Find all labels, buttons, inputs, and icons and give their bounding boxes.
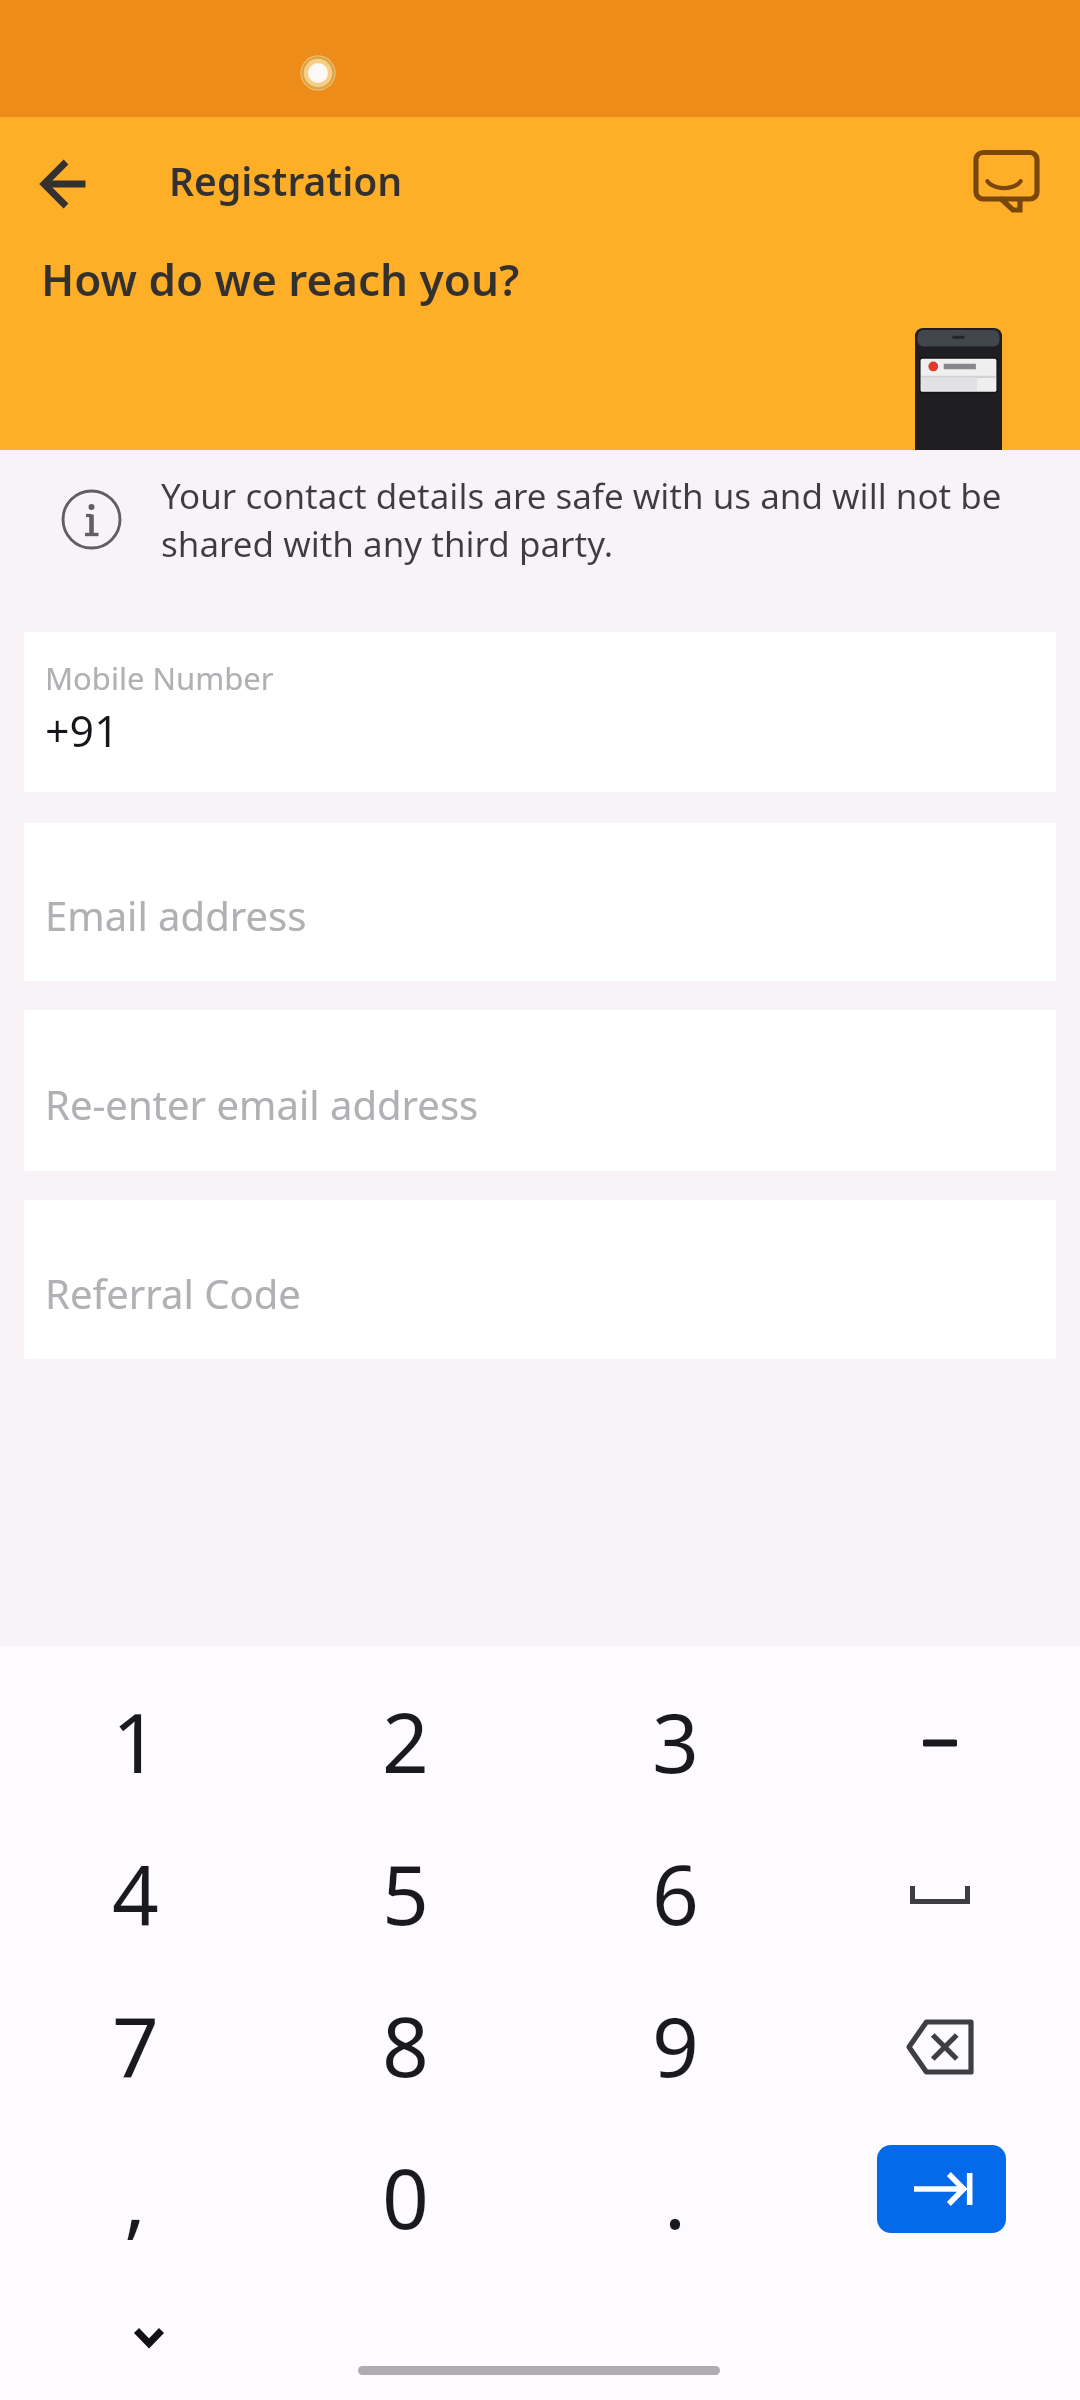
staticText: 6 [652,1837,699,1949]
button[interactable]: Hide keyboard [104,2292,194,2382]
staticText: Email address [45,888,307,942]
button[interactable]: Mobile Number [24,632,1056,792]
staticText: Re-enter email address [45,1077,479,1131]
button[interactable]: 8 [270,1969,540,2121]
button[interactable]: 2 [270,1665,540,1817]
button[interactable]: Space [810,1817,1080,1969]
staticText: 5 [382,1837,429,1949]
staticText: , [124,2141,146,2253]
button[interactable]: 4 [0,1817,270,1969]
staticText: 0 [382,2141,429,2253]
button[interactable]: Email address [24,823,1056,981]
button[interactable]: 3 [540,1665,810,1817]
button[interactable]: 9 [540,1969,810,2121]
other: Next field [810,2121,1080,2273]
staticText: 8 [382,1989,429,2101]
staticText: Your contact details are safe with us an… [161,472,1002,567]
button[interactable]: Back [19,139,109,229]
button[interactable]: 7 [0,1969,270,2121]
button[interactable]: Dash [810,1665,1080,1817]
button[interactable]: 1 [0,1665,270,1817]
button[interactable]: Chat support [944,124,1064,244]
staticText: 9 [652,1989,699,2101]
other: Space [810,1817,1080,1969]
staticText: How do we reach you? [41,249,520,309]
button[interactable]: Re-enter email address [24,1010,1056,1171]
staticText: 4 [112,1837,159,1949]
button[interactable]: 5 [270,1817,540,1969]
other: Dash [810,1665,1080,1817]
button[interactable]: Backspace [810,1969,1080,2121]
other: Backspace [810,1969,1080,2121]
staticText: Mobile Number [45,657,274,699]
button[interactable]: , [0,2121,270,2273]
staticText: 2 [382,1685,429,1797]
staticText: Registration [169,154,403,207]
button[interactable]: 0 [270,2121,540,2273]
staticText: 1 [112,1685,159,1797]
staticText: Referral Code [45,1266,301,1320]
button[interactable]: Referral Code [24,1200,1056,1359]
staticText: 3 [652,1685,699,1797]
button[interactable]: . [540,2121,810,2273]
button[interactable]: 6 [540,1817,810,1969]
staticText: . [664,2141,686,2253]
button[interactable]: Next field [810,2121,1080,2273]
staticText: +91 [45,701,119,760]
staticText: 7 [112,1989,159,2101]
